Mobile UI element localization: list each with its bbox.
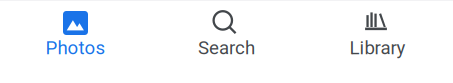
button[interactable]: Library — [302, 1, 453, 59]
button[interactable]: Search — [151, 1, 302, 59]
staticText: Photos — [45, 37, 105, 59]
staticText: Library — [349, 37, 405, 59]
staticText: Search — [198, 37, 255, 59]
button[interactable]: Photos — [0, 1, 151, 59]
